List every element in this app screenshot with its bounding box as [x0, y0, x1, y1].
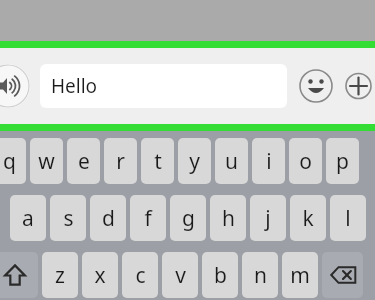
- staticText: h: [222, 204, 235, 233]
- button[interactable]: k: [290, 195, 326, 241]
- button[interactable]: i: [252, 138, 285, 184]
- button[interactable]: o: [289, 138, 322, 184]
- staticText: t: [154, 147, 162, 176]
- button[interactable]: y: [178, 138, 211, 184]
- button[interactable]: s: [50, 195, 86, 241]
- staticText: v: [175, 261, 186, 290]
- button[interactable]: t: [141, 138, 174, 184]
- staticText: w: [38, 147, 55, 176]
- button[interactable]: Shift: [0, 252, 38, 298]
- staticText: k: [302, 204, 314, 233]
- staticText: e: [78, 147, 90, 176]
- button[interactable]: j: [250, 195, 286, 241]
- button[interactable]: Backspace: [322, 252, 363, 298]
- staticText: u: [225, 147, 238, 176]
- button[interactable]: q: [0, 138, 26, 184]
- staticText: a: [22, 204, 34, 233]
- button[interactable]: z: [42, 252, 78, 298]
- button[interactable]: f: [130, 195, 166, 241]
- staticText: c: [135, 261, 146, 290]
- staticText: g: [182, 204, 195, 233]
- button[interactable]: d: [90, 195, 126, 241]
- button[interactable]: b: [202, 252, 238, 298]
- staticText: o: [299, 147, 312, 176]
- staticText: y: [189, 147, 200, 176]
- button[interactable]: u: [215, 138, 248, 184]
- button[interactable]: v: [162, 252, 198, 298]
- staticText: i: [266, 147, 272, 176]
- button[interactable]: x: [82, 252, 118, 298]
- button[interactable]: c: [122, 252, 158, 298]
- button[interactable]: n: [242, 252, 278, 298]
- button[interactable]: g: [170, 195, 206, 241]
- button[interactable]: e: [67, 138, 100, 184]
- staticText: r: [116, 147, 125, 176]
- staticText: f: [144, 204, 152, 233]
- staticText: j: [265, 204, 271, 233]
- staticText: d: [102, 204, 115, 233]
- staticText: n: [254, 261, 267, 290]
- button[interactable]: h: [210, 195, 246, 241]
- button[interactable]: r: [104, 138, 137, 184]
- button[interactable]: p: [326, 138, 359, 184]
- button[interactable]: Hello: [40, 64, 287, 108]
- button[interactable]: l: [330, 195, 366, 241]
- staticText: m: [290, 261, 310, 290]
- button[interactable]: Emoji: [296, 66, 336, 106]
- staticText: z: [55, 261, 65, 290]
- button[interactable]: Add attachment: [342, 66, 375, 106]
- button[interactable]: a: [10, 195, 46, 241]
- staticText: s: [63, 204, 74, 233]
- staticText: Hello: [51, 73, 98, 99]
- staticText: q: [3, 147, 16, 176]
- staticText: l: [345, 204, 351, 233]
- staticText: p: [336, 147, 349, 176]
- button[interactable]: w: [30, 138, 63, 184]
- staticText: x: [94, 261, 106, 290]
- button[interactable]: m: [282, 252, 318, 298]
- button[interactable]: Voice message: [0, 64, 30, 108]
- staticText: b: [214, 261, 227, 290]
